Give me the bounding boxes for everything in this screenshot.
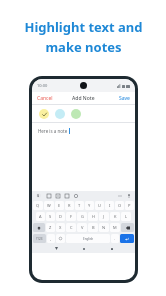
staticText: Cancel <box>37 95 53 102</box>
staticText: Q <box>36 203 40 208</box>
button[interactable]: Cancel <box>32 93 58 104</box>
staticText: K <box>114 214 117 219</box>
staticText: V <box>81 225 84 230</box>
staticText: J <box>103 214 105 219</box>
button[interactable]: Backspace <box>121 223 134 232</box>
button[interactable]: I <box>105 201 114 210</box>
button[interactable]: Here is a note <box>32 123 135 191</box>
button[interactable]: D <box>56 212 65 221</box>
staticText: Highlight text and <box>24 18 143 36</box>
staticText: P <box>128 203 131 208</box>
button[interactable]: Y <box>85 201 94 210</box>
button[interactable]: Keyboard tool 1 <box>46 193 51 198</box>
button[interactable]: F <box>66 212 76 221</box>
staticText: I <box>109 203 111 208</box>
staticText: W <box>47 203 51 208</box>
staticText: M <box>113 225 117 230</box>
button[interactable]: R <box>65 201 74 210</box>
staticText: L <box>125 214 128 219</box>
staticText: D <box>59 214 62 219</box>
button[interactable]: Space <box>66 234 110 243</box>
button[interactable]: Q <box>33 201 43 210</box>
button[interactable]: K <box>110 212 120 221</box>
button[interactable]: Enter <box>120 234 134 243</box>
staticText: R <box>68 203 71 208</box>
button[interactable]: Keyboard tool 2 <box>55 193 60 198</box>
staticText: C <box>70 225 73 230</box>
button[interactable]: More options <box>117 193 122 198</box>
staticText: T <box>78 203 81 208</box>
button[interactable]: L <box>121 212 131 221</box>
staticText: G <box>81 214 84 219</box>
button[interactable]: Z <box>46 223 55 232</box>
button[interactable]: P <box>125 201 134 210</box>
staticText: A <box>39 214 42 219</box>
button[interactable]: Blue highlight <box>55 109 65 119</box>
button[interactable]: Green highlight <box>71 109 81 119</box>
button[interactable]: V <box>77 223 87 232</box>
button[interactable]: Recent apps <box>108 245 115 252</box>
staticText: O <box>118 203 122 208</box>
staticText: Z <box>49 225 52 230</box>
staticText: Save <box>119 95 130 102</box>
staticText: F <box>70 214 73 219</box>
staticText: X <box>59 225 62 230</box>
button[interactable]: Back <box>53 245 60 252</box>
staticText: , <box>50 236 52 241</box>
button[interactable]: Keyboard tool 4 <box>73 193 78 198</box>
staticText: 10:00 <box>37 83 48 88</box>
staticText: English <box>83 237 94 241</box>
button[interactable]: U <box>95 201 104 210</box>
staticText: B <box>92 225 95 230</box>
button[interactable]: E <box>55 201 64 210</box>
button[interactable]: J <box>99 212 109 221</box>
button[interactable]: B <box>88 223 98 232</box>
button[interactable]: W <box>44 201 54 210</box>
staticText: S <box>49 214 52 219</box>
staticText: U <box>98 203 101 208</box>
button[interactable]: C <box>66 223 76 232</box>
button[interactable]: Voice input <box>126 193 131 198</box>
staticText: G <box>37 194 40 198</box>
button[interactable]: A <box>36 212 45 221</box>
staticText: Here is a note <box>38 128 68 134</box>
button[interactable]: , <box>47 234 55 243</box>
button[interactable]: Yellow highlight selected <box>39 109 49 119</box>
staticText: make notes <box>45 38 122 56</box>
staticText: H <box>92 214 95 219</box>
button[interactable]: Home <box>80 245 87 252</box>
staticText: E <box>58 203 61 208</box>
button[interactable]: G <box>77 212 87 221</box>
button[interactable]: Google <box>36 193 41 198</box>
button[interactable]: N <box>99 223 109 232</box>
button[interactable]: . <box>111 234 119 243</box>
button[interactable]: Save <box>114 93 135 104</box>
button[interactable]: X <box>56 223 65 232</box>
button[interactable]: Shift <box>33 223 45 232</box>
staticText: Add Note <box>72 95 95 102</box>
staticText: N <box>102 225 106 230</box>
button[interactable]: M <box>110 223 120 232</box>
button[interactable]: T <box>75 201 84 210</box>
staticText: . <box>114 236 116 241</box>
staticText: Y <box>88 203 91 208</box>
staticText: ?123 <box>36 237 43 241</box>
button[interactable]: ?123 <box>33 234 46 243</box>
button[interactable]: O <box>115 201 124 210</box>
button[interactable]: Keyboard tool 3 <box>64 193 69 198</box>
button[interactable]: H <box>88 212 98 221</box>
button[interactable]: S <box>46 212 55 221</box>
button[interactable]: Emoji <box>56 234 65 243</box>
